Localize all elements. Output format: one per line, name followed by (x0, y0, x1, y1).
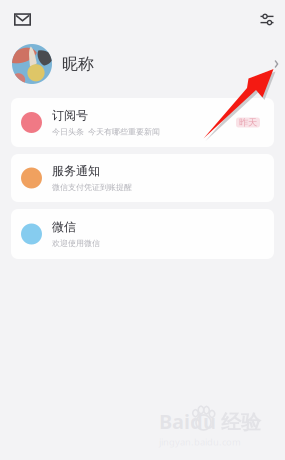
staticText: 微信支付凭证到账提醒 (52, 182, 132, 192)
button[interactable]: 微信 (11, 209, 274, 259)
button[interactable]: Mail (0, 5, 43, 34)
staticText: 昨天 (239, 117, 257, 128)
staticText: 微信 (52, 220, 76, 234)
staticText: 欢迎使用微信 (52, 238, 100, 248)
staticText: 服务通知 (52, 164, 100, 178)
staticText: 订阅号 (52, 108, 88, 123)
button[interactable]: 服务通知 (11, 154, 274, 202)
staticText: 今日头条 今天有哪些重要新闻 (52, 127, 160, 137)
staticText: 昵称 (62, 54, 94, 74)
staticText: Baidu 经验 (159, 408, 261, 435)
button[interactable]: 昵称 (0, 39, 285, 89)
button[interactable]: Filter (248, 5, 285, 34)
button[interactable]: 订阅号 (11, 98, 274, 147)
